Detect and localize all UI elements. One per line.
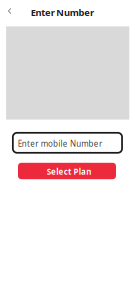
staticText: Select Plan	[47, 166, 91, 177]
button[interactable]: Back	[0, 0, 22, 22]
button[interactable]: Select Plan	[18, 163, 116, 179]
staticText: Enter mobile Number	[18, 138, 102, 149]
staticText: Enter Number	[31, 6, 94, 18]
button[interactable]: Enter mobile Number	[13, 133, 122, 153]
